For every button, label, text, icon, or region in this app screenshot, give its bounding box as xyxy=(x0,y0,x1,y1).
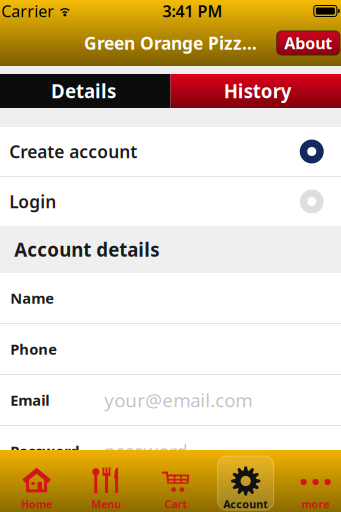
button[interactable]: Details xyxy=(0,74,170,108)
staticText: your@email.com xyxy=(104,388,252,412)
staticText: Login xyxy=(9,190,56,213)
button[interactable]: Create account xyxy=(0,127,341,176)
staticText: Email xyxy=(10,390,49,410)
staticText: 3:41 PM xyxy=(162,0,222,22)
staticText: Name xyxy=(10,288,54,308)
button[interactable]: Phone xyxy=(0,324,341,374)
button[interactable]: Home xyxy=(2,450,71,512)
staticText: Phone xyxy=(10,339,57,359)
staticText: Account details xyxy=(14,237,159,262)
staticText: Green Orange Pizz… xyxy=(84,31,257,54)
button[interactable]: History xyxy=(170,74,341,108)
staticText: password xyxy=(104,439,187,463)
button[interactable]: Confirm xyxy=(0,477,341,512)
staticText: Confirm xyxy=(10,492,69,512)
button[interactable]: Login xyxy=(0,177,341,226)
staticText: About xyxy=(284,32,332,54)
staticText: Menu xyxy=(91,497,121,511)
staticText: more xyxy=(301,497,329,511)
staticText: Create account xyxy=(9,140,137,163)
staticText: Details xyxy=(51,79,116,103)
staticText: Carrier xyxy=(1,0,54,22)
button[interactable]: Menu xyxy=(71,450,141,512)
button[interactable]: Cart xyxy=(141,450,211,512)
staticText: Password xyxy=(10,441,79,461)
staticText: History xyxy=(224,79,292,103)
button[interactable]: More xyxy=(281,450,341,512)
button[interactable]: Account xyxy=(211,450,281,512)
button[interactable]: About xyxy=(277,31,340,55)
button[interactable]: Password xyxy=(0,426,341,476)
button[interactable]: Name xyxy=(0,273,341,323)
staticText: Account xyxy=(223,497,268,511)
button[interactable]: Email xyxy=(0,375,341,425)
staticText: Home xyxy=(21,497,52,511)
staticText: re-type password xyxy=(104,490,255,512)
staticText: Cart xyxy=(164,497,187,511)
